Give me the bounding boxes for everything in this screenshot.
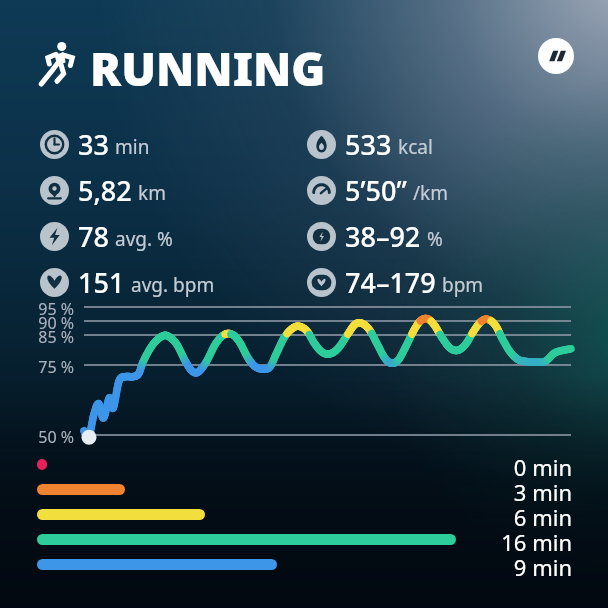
staticText: 151 xyxy=(78,264,125,300)
staticText: 5’50” xyxy=(345,172,407,208)
staticText: 6 min xyxy=(513,502,572,528)
button[interactable]: RUNNING xyxy=(26,34,326,98)
staticText: % xyxy=(427,226,443,252)
staticText: bpm xyxy=(442,272,484,298)
button[interactable]: 95 % xyxy=(0,292,608,452)
staticText: min xyxy=(115,134,150,160)
staticText: RUNNING xyxy=(90,37,326,100)
staticText: 9 min xyxy=(513,552,572,578)
staticText: avg. bpm xyxy=(131,272,215,298)
staticText: /km xyxy=(413,180,448,206)
button[interactable]: 151 xyxy=(40,264,310,300)
button[interactable]: 33 xyxy=(40,126,310,162)
staticText: 16 min xyxy=(501,527,572,553)
staticText: 50 % xyxy=(38,426,74,448)
button[interactable]: 16 min xyxy=(0,531,608,557)
button[interactable]: 3 min xyxy=(0,481,608,507)
staticText: 0 min xyxy=(513,452,572,478)
staticText: 78 xyxy=(78,218,109,254)
staticText: avg. % xyxy=(115,226,173,252)
staticText: 533 xyxy=(345,126,392,162)
staticText: 38–92 xyxy=(345,218,421,254)
button[interactable]: Polar logo xyxy=(538,38,574,74)
staticText: 90 % xyxy=(38,312,74,334)
staticText: kcal xyxy=(398,134,433,160)
button[interactable]: 74–179 xyxy=(307,264,577,300)
staticText: 75 % xyxy=(38,356,74,378)
button[interactable]: 0 min xyxy=(0,456,608,482)
button[interactable]: 78 xyxy=(40,218,310,254)
button[interactable]: 5,82 xyxy=(40,172,310,208)
button[interactable]: 6 min xyxy=(0,506,608,532)
button[interactable]: 38–92 xyxy=(307,218,577,254)
button[interactable]: 533 xyxy=(307,126,577,162)
staticText: 74–179 xyxy=(345,264,436,300)
staticText: 85 % xyxy=(38,326,74,348)
button[interactable]: 5’50” xyxy=(307,172,577,208)
staticText: 5,82 xyxy=(78,172,132,208)
button[interactable]: 9 min xyxy=(0,556,608,582)
staticText: km xyxy=(138,180,166,206)
staticText: 33 xyxy=(78,126,109,162)
staticText: 3 min xyxy=(513,477,572,503)
staticText: 95 % xyxy=(38,298,74,320)
